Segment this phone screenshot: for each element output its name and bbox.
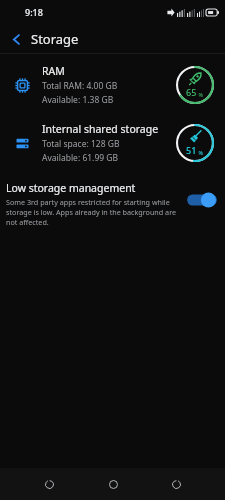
staticText: Low storage management — [6, 181, 136, 195]
button[interactable]: RAM — [0, 59, 225, 111]
staticText: Available: 1.38 GB — [42, 94, 114, 106]
staticText: Storage — [31, 30, 79, 48]
button[interactable]: Back — [34, 469, 64, 499]
staticText: Total space: 128 GB — [42, 138, 120, 150]
staticText: Some 3rd party apps restricted for start… — [6, 197, 181, 227]
staticText: Internal shared storage — [42, 122, 159, 136]
button[interactable]: Home — [98, 469, 128, 499]
button[interactable]: Internal shared storage — [0, 117, 225, 169]
button[interactable]: Back — [4, 27, 28, 51]
button[interactable]: Boost RAM — [173, 63, 217, 107]
staticText: 65 — [186, 86, 197, 98]
staticText: % — [197, 91, 204, 98]
button[interactable]: Clean storage — [173, 121, 217, 165]
staticText: Total RAM: 4.00 GB — [42, 80, 118, 92]
staticText: % — [197, 149, 204, 156]
button[interactable]: Low storage management toggle — [187, 191, 217, 209]
staticText: 51 — [186, 144, 197, 156]
staticText: Available: 61.99 GB — [42, 152, 119, 164]
button[interactable]: Low storage management — [0, 179, 225, 233]
staticText: RAM — [42, 64, 65, 78]
staticText: 9:18 — [25, 6, 43, 18]
button[interactable]: Recents — [161, 469, 191, 499]
